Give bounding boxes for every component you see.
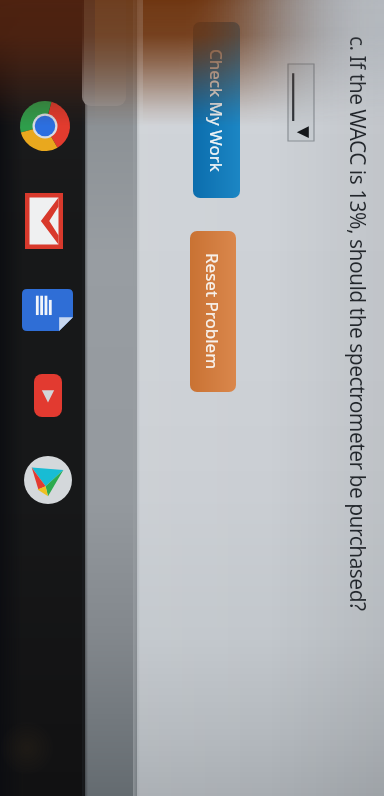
- button[interactable]: Gmail: [25, 193, 63, 249]
- button[interactable]: Google Docs: [22, 289, 73, 331]
- button[interactable]: Check My Work: [193, 22, 240, 198]
- staticText: Reset Problem: [201, 253, 224, 370]
- button[interactable]: Reset Problem: [190, 231, 236, 392]
- staticText: c. If the WACC is 13%, should the spectr…: [343, 36, 372, 611]
- staticText: Check My Work: [205, 49, 228, 172]
- button[interactable]: Chrome: [20, 101, 70, 151]
- button[interactable]: Select answer: [288, 64, 314, 141]
- button[interactable]: [82, 0, 126, 106]
- button[interactable]: Play Store: [24, 456, 72, 504]
- button[interactable]: YouTube: [34, 374, 62, 417]
